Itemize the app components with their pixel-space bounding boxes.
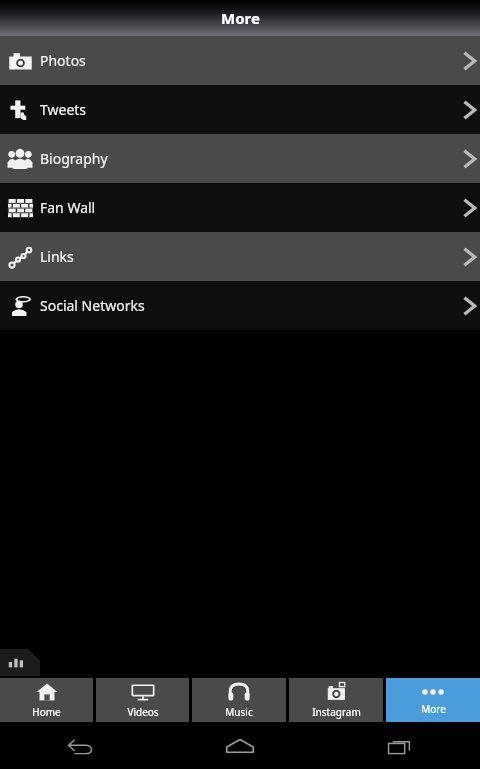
button[interactable]: Biography [0,134,480,183]
staticText: More [421,702,446,716]
staticText: Fan Wall [40,198,96,217]
button[interactable]: Fan Wall [0,183,480,232]
button[interactable]: Home [160,725,320,769]
staticText: Tweets [40,100,87,119]
staticText: Home [32,705,61,719]
button[interactable]: Back [0,725,160,769]
staticText: Photos [40,51,86,70]
button[interactable]: Instagram [289,678,383,722]
staticText: Videos [127,705,159,719]
button[interactable]: Photos [0,36,480,85]
button[interactable]: More [386,678,480,722]
staticText: Social Networks [40,296,145,315]
staticText: Instagram [312,705,361,719]
button[interactable]: Tweets [0,85,480,134]
button[interactable]: Recent apps [320,725,480,769]
staticText: Links [40,247,74,266]
staticText: Music [225,705,253,719]
button[interactable]: Links [0,232,480,281]
button[interactable]: Social Networks [0,281,480,330]
staticText: Biography [40,149,108,168]
button[interactable]: Music [192,678,286,722]
button[interactable]: Videos [96,678,189,722]
staticText: More [221,8,260,28]
button[interactable]: Home [0,678,93,722]
